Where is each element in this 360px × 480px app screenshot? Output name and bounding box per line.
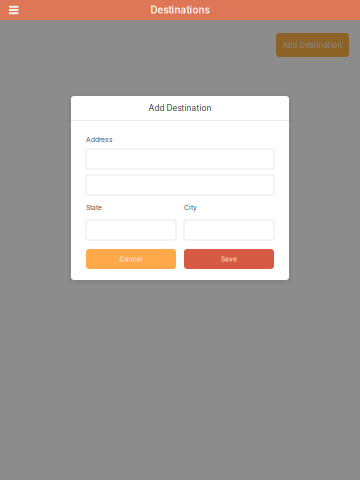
button[interactable]: State	[86, 220, 176, 240]
staticText: Cancel	[119, 255, 142, 263]
staticText: Destinations	[150, 4, 209, 16]
staticText: State	[86, 203, 102, 212]
staticText: Save	[221, 255, 237, 263]
staticText: Add Destination	[148, 103, 211, 113]
staticText: City	[184, 203, 197, 212]
button[interactable]: Address line 2	[86, 175, 274, 195]
button[interactable]: Address line 1	[86, 149, 274, 169]
staticText: Add Destination	[282, 40, 342, 50]
button[interactable]: Add Destination	[276, 33, 349, 57]
button[interactable]: Menu	[0, 0, 24, 20]
button[interactable]: City	[184, 220, 274, 240]
staticText: Address	[86, 135, 113, 144]
button[interactable]: Save	[184, 249, 274, 269]
button[interactable]: Cancel	[86, 249, 176, 269]
